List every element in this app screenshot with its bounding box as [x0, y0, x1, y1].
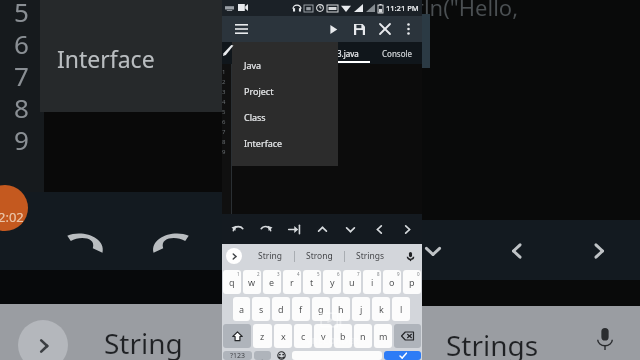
staticText: 5	[222, 108, 226, 118]
staticText: 3	[222, 88, 226, 98]
staticText: g	[318, 303, 324, 315]
button[interactable]: Emoji	[273, 351, 290, 360]
button[interactable]: Strings	[345, 244, 394, 268]
staticText: c	[301, 330, 306, 342]
button[interactable]: x	[274, 324, 292, 348]
button[interactable]: y	[323, 270, 341, 294]
staticText: k	[379, 303, 384, 315]
staticText: m	[379, 330, 388, 342]
button[interactable]: g	[312, 297, 330, 321]
staticText: Class	[244, 111, 266, 123]
button[interactable]: e	[263, 270, 281, 294]
button[interactable]: c	[294, 324, 312, 348]
button[interactable]: n	[354, 324, 372, 348]
staticText: Java	[244, 59, 262, 71]
staticText: 7	[222, 128, 226, 138]
button[interactable]: h	[332, 297, 350, 321]
button[interactable]: Voice input	[402, 248, 418, 264]
staticText: 0	[417, 271, 420, 277]
button[interactable]: Project	[232, 78, 338, 104]
button[interactable]: k	[372, 297, 390, 321]
button[interactable]: Save	[346, 16, 372, 42]
staticText: f	[299, 303, 303, 315]
button[interactable]: a	[233, 297, 250, 321]
button[interactable]: Console	[374, 42, 420, 64]
button[interactable]: String	[246, 244, 294, 268]
button[interactable]: Java	[232, 52, 338, 78]
button[interactable]: w	[243, 270, 261, 294]
button[interactable]: Move left	[366, 216, 392, 242]
button[interactable]: Redo	[253, 216, 279, 242]
staticText: 1	[237, 271, 240, 277]
button[interactable]: u	[343, 270, 361, 294]
button[interactable]: Tab	[281, 216, 307, 242]
button[interactable]: v	[314, 324, 332, 348]
button[interactable]: Move down	[337, 216, 363, 242]
button[interactable]: Move right	[394, 216, 420, 242]
staticText: w	[248, 276, 256, 288]
button[interactable]: z	[253, 324, 272, 348]
staticText: String	[104, 324, 183, 360]
button[interactable]: Backspace	[394, 324, 421, 348]
button[interactable]: b	[334, 324, 352, 348]
button[interactable]: i	[363, 270, 381, 294]
button[interactable]: Shift	[223, 324, 251, 348]
staticText: Strings	[446, 326, 539, 360]
staticText: String	[258, 250, 282, 262]
button[interactable]: Comma	[254, 351, 271, 360]
button[interactable]: Interface	[232, 130, 338, 156]
staticText: 2:02	[0, 208, 24, 226]
button[interactable]: More options	[398, 19, 418, 39]
button[interactable]: 3.java	[326, 42, 370, 64]
staticText: oid main(String[	[234, 111, 311, 122]
staticText: 3.java	[337, 48, 359, 59]
button[interactable]: d	[272, 297, 290, 321]
staticText: VRECORDER	[306, 334, 359, 346]
staticText: r	[290, 276, 294, 288]
button[interactable]: Strong	[295, 244, 344, 268]
staticText: y	[330, 276, 335, 288]
staticText: 3	[277, 271, 280, 277]
button[interactable]: o	[383, 270, 401, 294]
button[interactable]: t	[303, 270, 321, 294]
button[interactable]: Move up	[309, 216, 335, 242]
button[interactable]: m	[374, 324, 392, 348]
button[interactable]: q	[223, 270, 241, 294]
staticText: x	[281, 330, 286, 342]
button[interactable]: r	[283, 270, 301, 294]
button[interactable]: Enter	[384, 351, 421, 360]
staticText: 8	[222, 138, 226, 148]
button[interactable]: f	[292, 297, 310, 321]
staticText: Strings	[356, 250, 384, 262]
staticText: v	[321, 330, 326, 342]
button[interactable]: Navigation menu	[228, 16, 254, 42]
button[interactable]: Symbols	[223, 351, 252, 360]
staticText: Interface	[57, 43, 155, 74]
staticText: u	[349, 276, 355, 288]
staticText: 6	[14, 26, 29, 58]
button[interactable]: Class	[232, 104, 338, 130]
staticText: b	[340, 330, 346, 342]
button[interactable]: Undo	[224, 216, 250, 242]
staticText: p	[409, 276, 415, 288]
staticText: z	[260, 330, 265, 342]
staticText: Interface	[244, 137, 283, 149]
button[interactable]: More suggestions	[226, 248, 242, 264]
staticText: 7	[357, 271, 360, 277]
staticText: 8	[14, 90, 29, 122]
staticText: o	[389, 276, 395, 288]
staticText: Project	[244, 85, 274, 97]
button[interactable]: l	[392, 297, 410, 321]
button[interactable]: p	[403, 270, 421, 294]
staticText: a	[239, 303, 245, 315]
staticText: 5	[317, 271, 320, 277]
staticText: e	[269, 276, 275, 288]
staticText: 5	[14, 0, 29, 26]
button[interactable]: Close	[372, 16, 398, 42]
button[interactable]: s	[252, 297, 270, 321]
button[interactable]: j	[352, 297, 370, 321]
button[interactable]: Run	[320, 16, 346, 42]
